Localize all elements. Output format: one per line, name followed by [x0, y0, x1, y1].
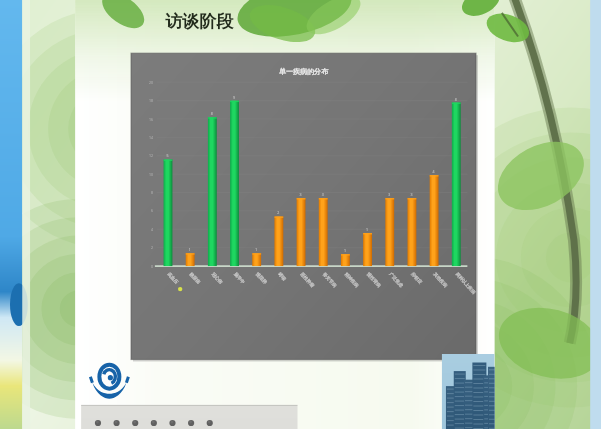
button[interactable]: 单一疾病的分布 bar chart [0, 0, 601, 429]
button[interactable]: Presentation slide [0, 0, 601, 429]
